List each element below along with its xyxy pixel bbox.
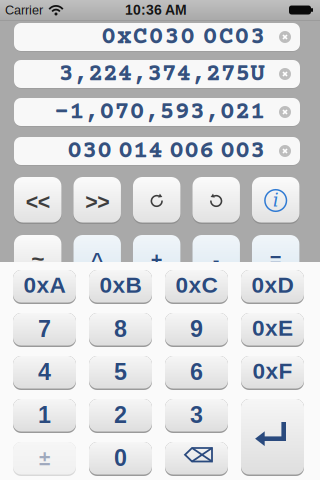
staticText: ~ (31, 246, 44, 272)
button[interactable]: 0xB (89, 270, 152, 304)
button[interactable]: Rotate left (133, 177, 180, 224)
staticText: i (273, 189, 279, 211)
staticText: 0xA (23, 272, 65, 298)
button[interactable]: Rotate right (192, 177, 240, 224)
staticText: 3,224,374,275U (58, 61, 265, 89)
staticText: 030 014 006 003 (67, 138, 265, 166)
staticText: 0 (114, 445, 127, 471)
button[interactable]: Clear text (265, 68, 300, 80)
button[interactable]: ^ (73, 235, 121, 282)
staticText: << (26, 190, 50, 214)
staticText: + (151, 249, 163, 271)
button[interactable]: Clear text (265, 31, 300, 43)
button[interactable]: Return (241, 399, 304, 476)
staticText: 0xD (251, 272, 293, 298)
staticText: 0xC (175, 272, 217, 298)
button[interactable]: 7 (13, 313, 76, 347)
button[interactable]: 3 (165, 399, 228, 433)
button[interactable]: 6 (165, 356, 228, 390)
staticText: 0xF (252, 358, 292, 384)
button[interactable]: 1 (13, 399, 76, 433)
button[interactable]: ± (13, 442, 76, 476)
staticText: ^ (91, 249, 103, 271)
button[interactable]: 0xA (13, 270, 76, 304)
button[interactable]: ~ (14, 235, 61, 282)
button[interactable]: 8 (89, 313, 152, 347)
button[interactable]: + (133, 235, 180, 282)
button[interactable]: Info (252, 177, 299, 224)
button[interactable]: << (14, 177, 61, 224)
staticText: 0xB (99, 272, 141, 298)
staticText: >> (85, 190, 109, 214)
button[interactable]: Clear text (265, 106, 300, 118)
staticText: 3 (190, 402, 203, 428)
staticText: 10:36 AM (125, 2, 187, 18)
staticText: 7 (38, 316, 51, 342)
staticText: 6 (190, 359, 203, 385)
staticText: 5 (114, 359, 127, 385)
button[interactable]: = (252, 235, 299, 282)
staticText: = (270, 249, 282, 271)
staticText: 4 (38, 359, 51, 385)
button[interactable]: - (192, 235, 240, 282)
staticText: 1 (38, 402, 51, 428)
staticText: 0xE (252, 315, 293, 341)
staticText: 2 (114, 402, 127, 428)
staticText: 8 (114, 316, 127, 342)
staticText: ± (39, 446, 50, 470)
button[interactable]: Delete (165, 442, 228, 476)
button[interactable]: 4 (13, 356, 76, 390)
button[interactable]: 9 (165, 313, 228, 347)
button[interactable]: Clear text (265, 145, 300, 157)
button[interactable]: 0 (89, 442, 152, 476)
staticText: - (213, 249, 220, 271)
staticText: 9 (190, 316, 203, 342)
button[interactable]: 2 (89, 399, 152, 433)
staticText: 0xC030 0C03 (101, 24, 265, 52)
button[interactable]: >> (73, 177, 121, 224)
staticText: Carrier (5, 3, 43, 17)
button[interactable]: 0xF (241, 356, 304, 390)
button[interactable]: 5 (89, 356, 152, 390)
staticText: -1,070,593,021 (54, 99, 265, 127)
button[interactable]: 0xC (165, 270, 228, 304)
button[interactable]: 0xD (241, 270, 304, 304)
button[interactable]: 0xE (241, 313, 304, 347)
